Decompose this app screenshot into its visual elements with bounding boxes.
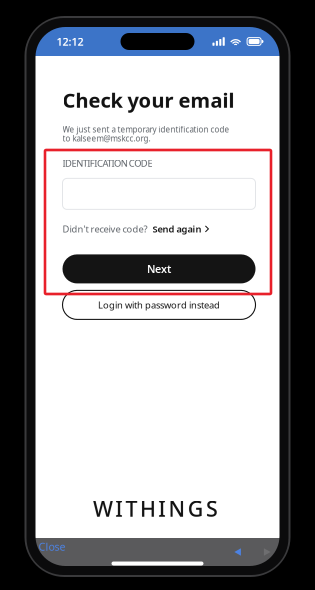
staticText: Login with password instead bbox=[98, 299, 220, 311]
staticText: Close bbox=[38, 539, 65, 554]
staticText: WITHINGS bbox=[93, 494, 218, 523]
staticText: Check your email bbox=[62, 87, 234, 113]
staticText: Next bbox=[147, 262, 171, 276]
button[interactable]: Send again bbox=[152, 223, 209, 235]
staticText: We just sent a temporary identification … bbox=[62, 124, 229, 135]
button[interactable]: Forward bbox=[261, 546, 273, 558]
button[interactable]: Close bbox=[36, 539, 67, 553]
button[interactable]: Next bbox=[62, 254, 255, 283]
button[interactable]: Login with password instead bbox=[62, 290, 255, 319]
staticText: to kalseem@mskcc.org. bbox=[62, 133, 150, 144]
staticText: Didn't receive code? bbox=[62, 223, 147, 235]
staticText: Send again bbox=[152, 223, 201, 235]
staticText: 12:12 bbox=[56, 34, 83, 49]
staticText: IDENTIFICATION CODE bbox=[62, 157, 152, 169]
button[interactable]: Back bbox=[231, 546, 244, 558]
